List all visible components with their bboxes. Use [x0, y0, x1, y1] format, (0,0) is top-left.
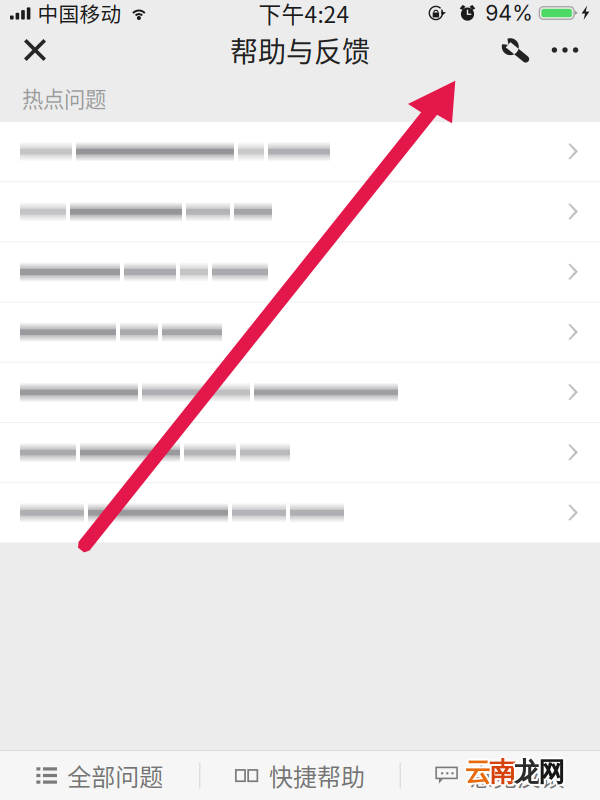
button[interactable] — [0, 303, 600, 363]
button[interactable] — [0, 423, 600, 483]
button[interactable] — [0, 182, 600, 242]
staticText: 龙 — [514, 755, 541, 789]
staticText: 网 — [537, 754, 564, 787]
staticText: 龙 — [512, 757, 539, 790]
staticText: 南 — [488, 757, 515, 790]
staticText: 龙 — [514, 753, 541, 787]
staticText: 龙 — [512, 755, 539, 789]
staticText: 龙 — [516, 755, 543, 789]
button[interactable]: 快捷帮助 — [200, 751, 400, 800]
staticText: 龙 — [515, 757, 542, 790]
staticText: 云 — [465, 755, 492, 789]
staticText: 云 — [463, 755, 490, 789]
button[interactable]: 全部问题 — [0, 751, 199, 800]
staticText: 中国移动 — [37, 0, 121, 28]
staticText: 南 — [488, 754, 515, 787]
staticText: 云 — [466, 757, 493, 790]
staticText: 南 — [489, 753, 516, 787]
button[interactable]: 设置 — [490, 26, 538, 74]
staticText: 南 — [487, 755, 514, 789]
staticText: 网 — [540, 757, 567, 790]
button[interactable] — [0, 363, 600, 423]
staticText: 南 — [489, 755, 516, 789]
staticText: 94% — [485, 0, 533, 26]
staticText: 热点问题 — [22, 83, 106, 113]
staticText: 下午4:24 — [258, 0, 349, 29]
staticText: 云 — [467, 755, 494, 789]
staticText: 帮助与反馈 — [230, 30, 370, 70]
staticText: 网 — [540, 755, 567, 789]
staticText: 南 — [489, 757, 516, 791]
staticText: 南 — [491, 757, 518, 790]
staticText: 龙 — [515, 754, 542, 787]
button[interactable] — [0, 242, 600, 303]
button[interactable]: 更多 — [538, 26, 592, 74]
staticText: 网 — [536, 755, 563, 789]
staticText: 网 — [538, 757, 565, 791]
staticText: 网 — [540, 754, 567, 787]
staticText: 网 — [538, 755, 565, 789]
staticText: 龙 — [512, 754, 539, 787]
staticText: 意见反馈 — [469, 758, 565, 793]
staticText: 南 — [491, 755, 518, 789]
staticText: 快捷帮助 — [269, 758, 365, 793]
staticText: 龙 — [514, 757, 541, 791]
staticText: 全部问题 — [67, 758, 163, 793]
staticText: 南 — [491, 754, 518, 787]
staticText: 云 — [465, 757, 492, 791]
staticText: 云 — [463, 754, 490, 787]
staticText: 网 — [537, 757, 564, 790]
staticText: 云 — [463, 757, 490, 790]
staticText: 云 — [465, 753, 492, 787]
staticText: 网 — [538, 753, 565, 787]
button[interactable]: 关闭 — [8, 26, 62, 74]
button[interactable]: 意见反馈 — [401, 751, 600, 800]
button[interactable] — [0, 122, 600, 182]
staticText: 云 — [466, 754, 493, 787]
button[interactable] — [0, 483, 600, 542]
